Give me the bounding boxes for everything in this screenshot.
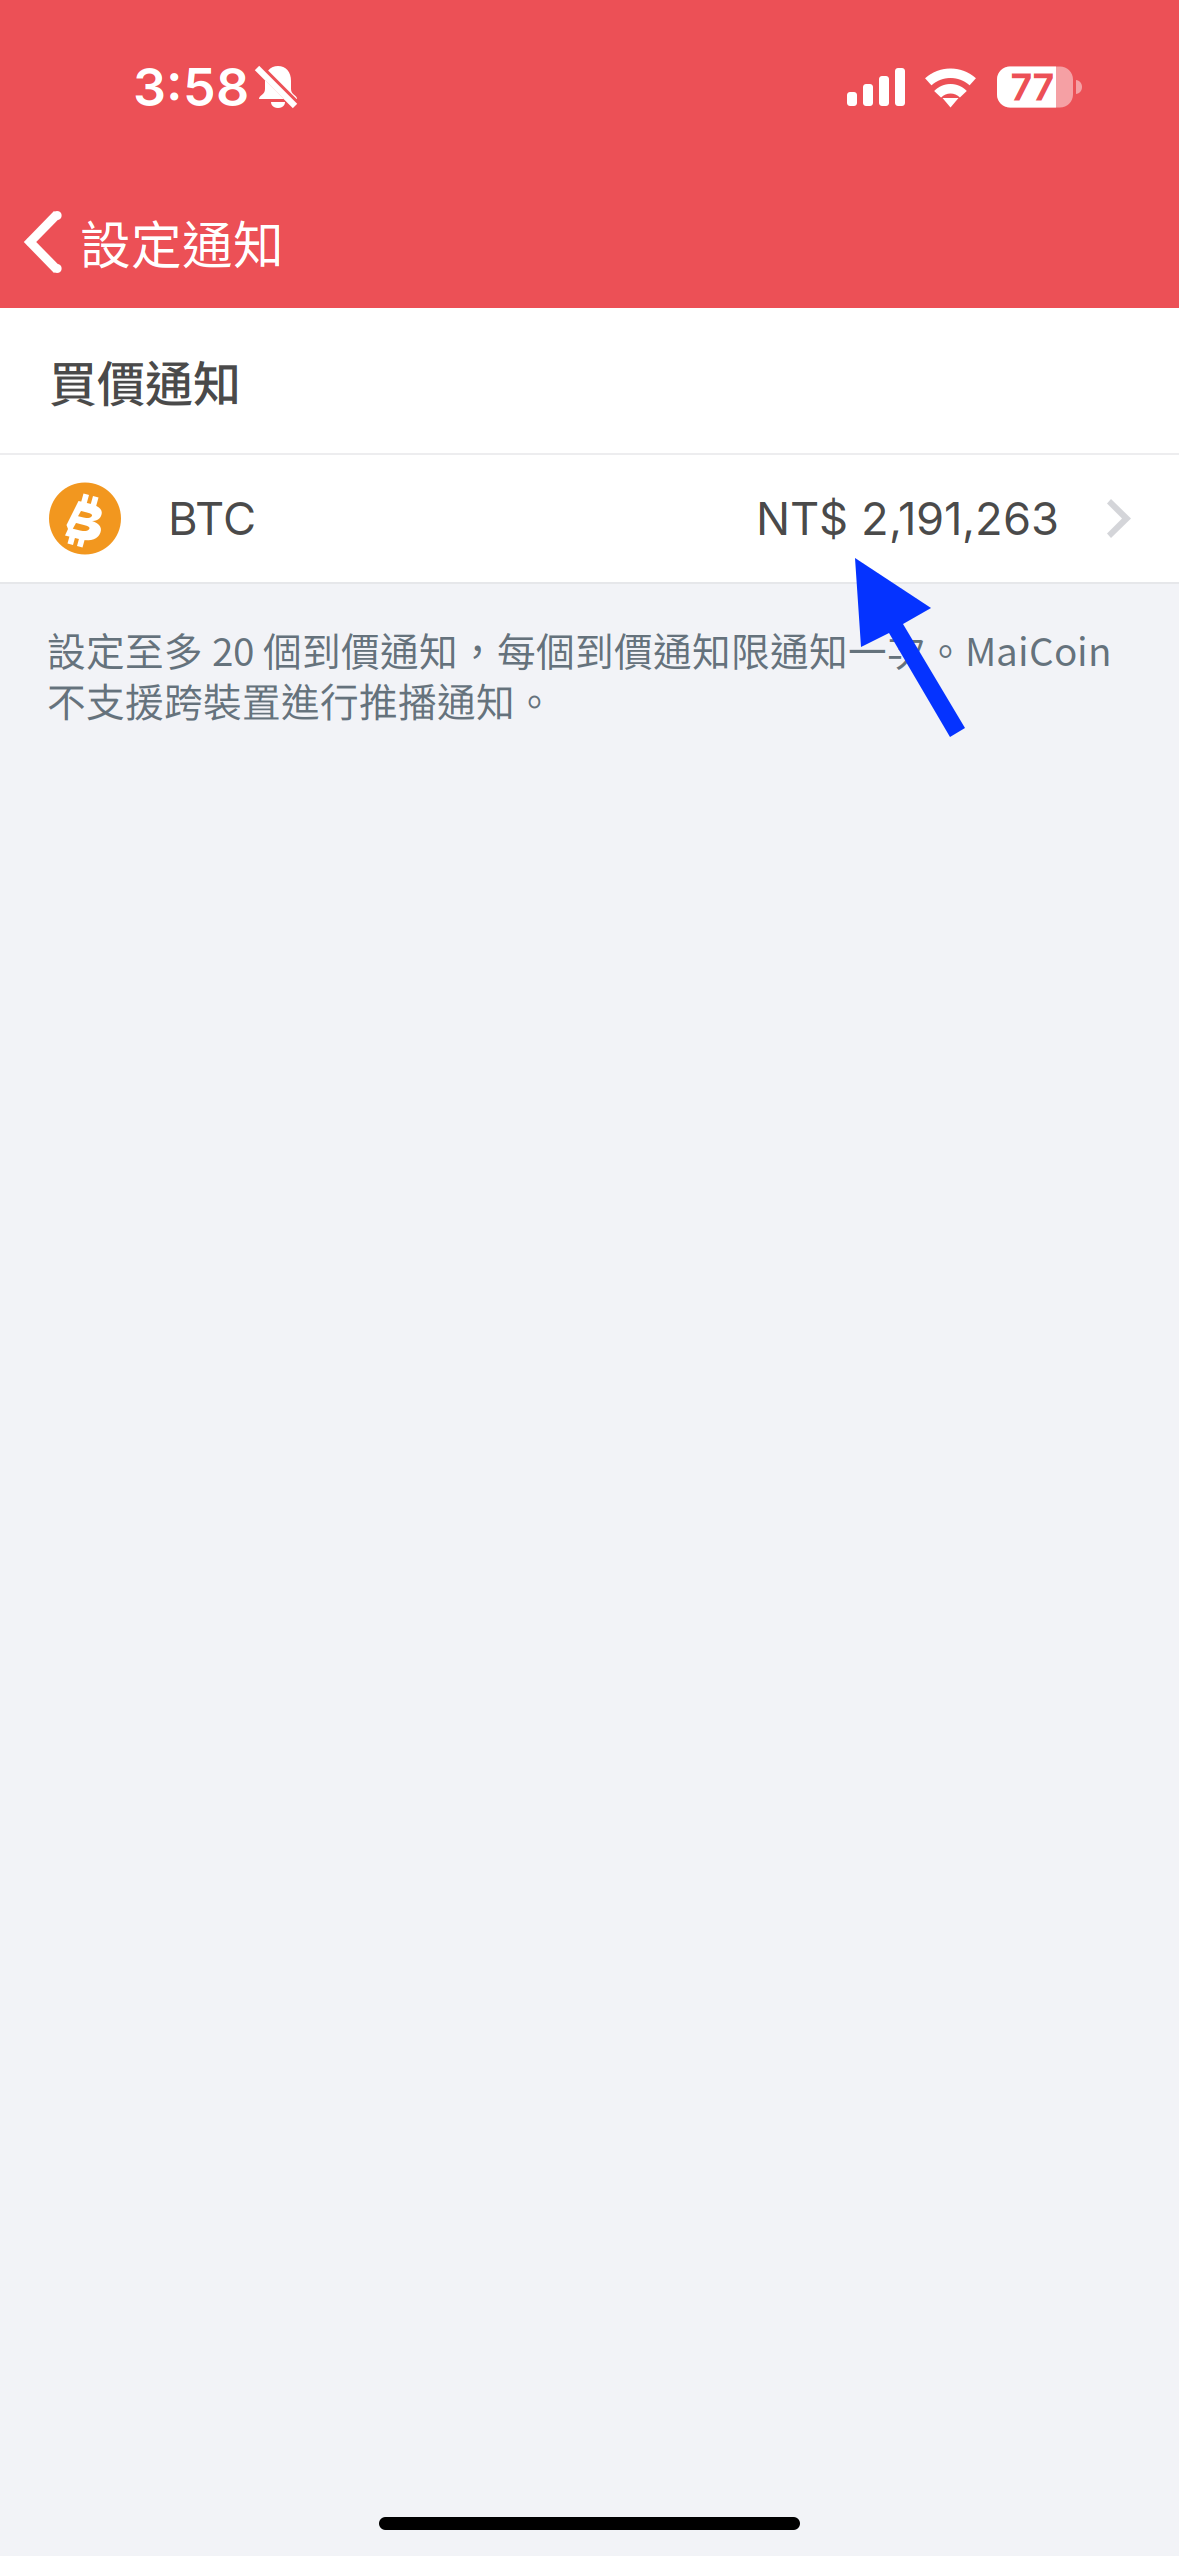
button[interactable]: BTC — [0, 455, 1179, 582]
staticText: NT$ 2,191,263 — [756, 491, 1059, 546]
staticText: 77 — [1011, 64, 1054, 110]
staticText: BTC — [168, 491, 256, 546]
staticText: 設定至多 20 個到價通知，每個到價通知限通知一次。MaiCoin不支援跨裝置進… — [47, 624, 1112, 725]
staticText: 設定通知 — [80, 205, 284, 279]
button[interactable]: 設定通知 — [0, 211, 306, 273]
staticText: 3:58 — [133, 55, 249, 118]
staticText: 買價通知 — [49, 346, 241, 415]
